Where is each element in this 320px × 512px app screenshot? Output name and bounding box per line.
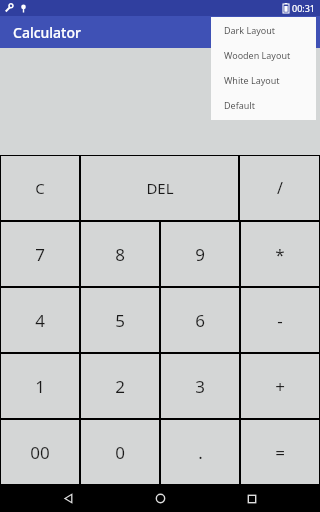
staticText: 4: [35, 309, 45, 332]
staticText: Default: [224, 99, 255, 111]
staticText: 7: [35, 243, 45, 266]
staticText: *: [275, 243, 285, 266]
staticText: Wooden Layout: [224, 49, 291, 61]
staticText: 00: [30, 441, 50, 464]
staticText: +: [275, 375, 285, 398]
button[interactable]: +: [241, 354, 319, 418]
staticText: 9: [195, 243, 205, 266]
button[interactable]: Recent apps: [227, 485, 277, 512]
button[interactable]: Dark Layout: [211, 17, 316, 42]
staticText: C: [35, 178, 45, 198]
button[interactable]: White Layout: [211, 67, 316, 92]
button[interactable]: .: [161, 420, 239, 484]
button[interactable]: =: [241, 420, 319, 484]
button[interactable]: DEL: [81, 156, 238, 220]
button[interactable]: 8: [81, 222, 159, 286]
staticText: 2: [115, 375, 125, 398]
button[interactable]: Wooden Layout: [211, 42, 316, 67]
staticText: 5: [115, 309, 125, 332]
staticText: 3: [195, 375, 205, 398]
staticText: 8: [115, 243, 125, 266]
button[interactable]: 0: [81, 420, 159, 484]
button[interactable]: 00: [1, 420, 79, 484]
staticText: Calculator: [13, 23, 81, 42]
button[interactable]: 4: [1, 288, 79, 352]
staticText: 1: [35, 375, 45, 398]
button[interactable]: /: [240, 156, 319, 220]
staticText: 0: [115, 441, 125, 464]
button[interactable]: 3: [161, 354, 239, 418]
staticText: 00:31: [292, 2, 316, 14]
button[interactable]: 9: [161, 222, 239, 286]
button[interactable]: 1: [1, 354, 79, 418]
button[interactable]: C: [1, 156, 79, 220]
button[interactable]: 6: [161, 288, 239, 352]
staticText: White Layout: [224, 74, 280, 86]
button[interactable]: Back: [43, 485, 93, 512]
button[interactable]: 7: [1, 222, 79, 286]
button[interactable]: Default: [211, 92, 316, 117]
button[interactable]: -: [241, 288, 319, 352]
staticText: .: [198, 441, 203, 464]
staticText: /: [277, 177, 283, 199]
button[interactable]: 2: [81, 354, 159, 418]
staticText: DEL: [146, 178, 174, 198]
staticText: -: [277, 309, 283, 332]
button[interactable]: *: [241, 222, 319, 286]
staticText: Dark Layout: [224, 24, 276, 36]
staticText: 6: [195, 309, 205, 332]
button[interactable]: Home: [135, 485, 185, 512]
staticText: =: [275, 441, 285, 464]
button[interactable]: 5: [81, 288, 159, 352]
